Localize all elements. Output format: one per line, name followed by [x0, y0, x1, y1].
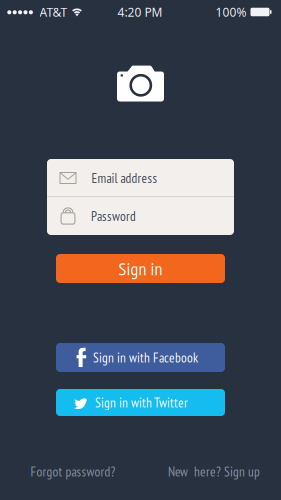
button[interactable]: Password: [47, 197, 234, 235]
button[interactable]: Email address: [47, 159, 234, 197]
button[interactable]: Sign in: [56, 254, 225, 283]
button[interactable]: Forgot password?: [30, 463, 115, 480]
staticText: AT&T: [39, 4, 67, 20]
staticText: 4:20 PM: [117, 4, 162, 20]
staticText: New here? Sign up: [168, 463, 260, 480]
button[interactable]: New here? Sign up: [168, 463, 260, 480]
staticText: Password: [91, 207, 136, 225]
staticText: Sign in: [118, 257, 162, 280]
staticText: Sign in with Facebook: [93, 349, 198, 366]
staticText: Email address: [91, 169, 157, 187]
staticText: Forgot password?: [30, 463, 115, 480]
button[interactable]: Sign in with Twitter: [56, 389, 225, 416]
staticText: Sign in with Twitter: [95, 394, 188, 411]
button[interactable]: Sign in with Facebook: [56, 343, 225, 372]
staticText: 100%: [215, 4, 246, 20]
